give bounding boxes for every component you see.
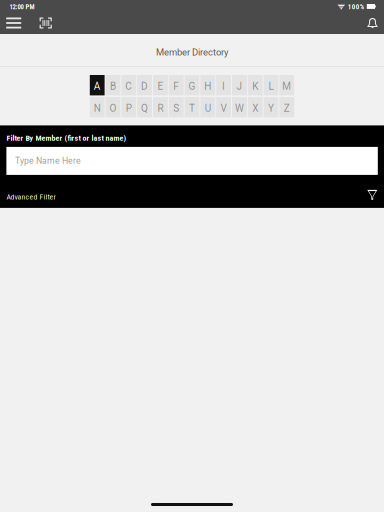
staticText: G: [188, 80, 195, 92]
button[interactable]: Scan barcode: [35, 14, 56, 31]
staticText: M: [282, 80, 291, 92]
staticText: 12:00 PM: [9, 3, 34, 11]
button[interactable]: Z: [279, 97, 294, 117]
staticText: A: [94, 80, 101, 92]
button[interactable]: G: [185, 75, 199, 95]
button[interactable]: V: [216, 97, 231, 117]
button[interactable]: B: [106, 75, 120, 95]
button[interactable]: S: [169, 97, 184, 117]
staticText: Filter By Member (first or last name): [6, 133, 126, 143]
staticText: Advanced Filter: [6, 192, 55, 201]
staticText: R: [157, 102, 163, 114]
button[interactable]: O: [106, 97, 120, 117]
button[interactable]: R: [153, 97, 168, 117]
button[interactable]: K: [248, 75, 263, 95]
staticText: B: [110, 80, 116, 92]
button[interactable]: W: [232, 97, 247, 117]
staticText: Z: [284, 102, 290, 114]
staticText: E: [157, 80, 163, 92]
staticText: H: [204, 80, 211, 92]
button[interactable]: U: [200, 97, 215, 117]
button[interactable]: Notifications: [362, 14, 383, 31]
staticText: Type Name Here: [15, 156, 81, 166]
button[interactable]: D: [137, 75, 152, 95]
staticText: X: [252, 102, 258, 114]
button[interactable]: A: [90, 75, 105, 95]
button[interactable]: F: [169, 75, 184, 95]
button[interactable]: L: [264, 75, 278, 95]
button[interactable]: Advanced Filter: [367, 188, 378, 202]
staticText: Q: [141, 102, 148, 114]
button[interactable]: Menu: [3, 14, 24, 31]
staticText: D: [141, 80, 148, 92]
staticText: J: [236, 80, 242, 92]
staticText: O: [109, 102, 116, 114]
button[interactable]: J: [232, 75, 247, 95]
button[interactable]: Type Name Here: [6, 147, 378, 175]
staticText: T: [189, 102, 195, 114]
staticText: Member Directory: [156, 47, 228, 58]
button[interactable]: C: [121, 75, 136, 95]
button[interactable]: M: [279, 75, 294, 95]
staticText: V: [221, 102, 227, 114]
staticText: Y: [268, 102, 274, 114]
button[interactable]: Y: [264, 97, 278, 117]
staticText: L: [268, 80, 273, 92]
button[interactable]: H: [200, 75, 215, 95]
staticText: K: [252, 80, 258, 92]
button[interactable]: E: [153, 75, 168, 95]
button[interactable]: X: [248, 97, 263, 117]
staticText: W: [235, 102, 244, 114]
staticText: S: [173, 102, 179, 114]
button[interactable]: Q: [137, 97, 152, 117]
staticText: I: [222, 80, 225, 92]
staticText: C: [125, 80, 132, 92]
staticText: 100%: [348, 3, 364, 11]
button[interactable]: N: [90, 97, 105, 117]
button[interactable]: T: [185, 97, 199, 117]
staticText: F: [173, 80, 179, 92]
staticText: U: [205, 102, 211, 114]
button[interactable]: I: [216, 75, 231, 95]
staticText: N: [94, 102, 101, 114]
staticText: P: [126, 102, 132, 114]
button[interactable]: P: [121, 97, 136, 117]
